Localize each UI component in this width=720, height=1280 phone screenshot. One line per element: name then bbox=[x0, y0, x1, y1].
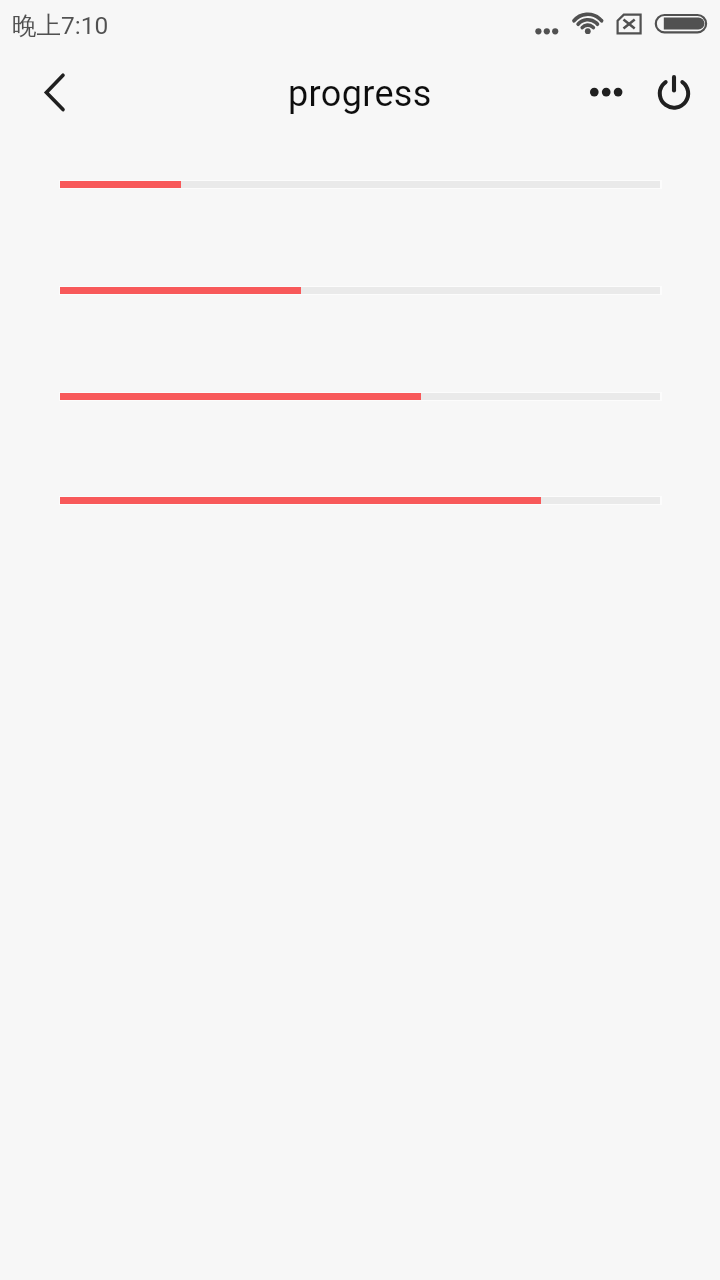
button[interactable]: Back bbox=[11, 58, 81, 128]
button[interactable]: Progress 40 percent bbox=[59, 286, 662, 295]
staticText: progress bbox=[288, 73, 432, 115]
staticText: 晚上7:10 bbox=[12, 10, 109, 41]
button[interactable]: Progress 80 percent bbox=[59, 496, 662, 505]
button[interactable]: Progress 60 percent bbox=[59, 392, 662, 401]
other: Status icons bbox=[0, 0, 720, 52]
button[interactable]: Power bbox=[639, 57, 709, 127]
button[interactable]: Progress 20 percent bbox=[59, 180, 662, 189]
button[interactable]: More options bbox=[570, 57, 640, 127]
